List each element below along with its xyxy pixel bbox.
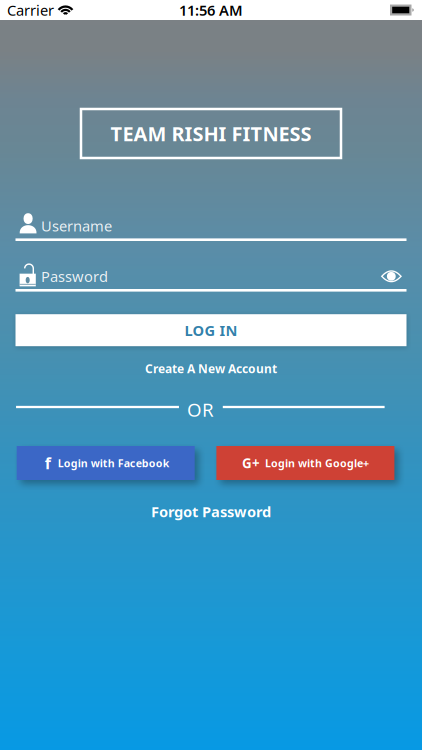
button[interactable]: LOG IN	[15, 314, 406, 346]
staticText: LOG IN	[184, 320, 237, 340]
staticText: Username	[41, 216, 112, 235]
staticText: TEAM RISHI FITNESS	[110, 120, 311, 147]
button[interactable]: f	[17, 446, 195, 480]
staticText: G+	[242, 454, 260, 472]
staticText: 11:56 AM	[179, 0, 243, 20]
staticText: Login with Google+	[265, 456, 369, 470]
button[interactable]: Forgot Password	[131, 499, 291, 523]
staticText: Login with Facebook	[58, 456, 170, 470]
button[interactable]: G+	[216, 446, 394, 480]
staticText: OR	[187, 397, 214, 422]
staticText: Password	[41, 267, 108, 286]
staticText: f	[45, 452, 51, 474]
staticText: Create A New Account	[145, 360, 277, 376]
staticText: Carrier	[7, 0, 54, 20]
staticText: Forgot Password	[151, 502, 271, 521]
button[interactable]: Show password	[376, 264, 407, 288]
button[interactable]: Create A New Account	[111, 357, 311, 379]
